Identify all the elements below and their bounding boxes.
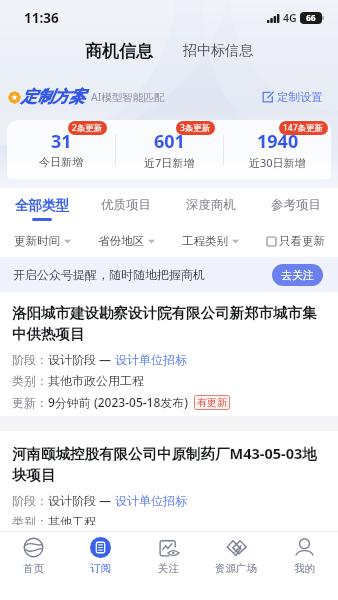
staticText: 全部类型 xyxy=(15,197,69,214)
staticText: 类别： xyxy=(12,373,48,388)
button[interactable]: 省份地区 xyxy=(84,225,168,257)
button[interactable]: 资源广场 xyxy=(202,532,270,600)
staticText: 601 xyxy=(154,129,185,154)
staticText: 商机信息 xyxy=(85,41,153,62)
button[interactable]: 工程类别 xyxy=(168,225,253,257)
button[interactable]: 订阅 xyxy=(67,532,134,600)
button[interactable]: 关注 xyxy=(134,532,202,600)
staticText: 河南颐城控股有限公司中原制药厂M43-05-03地块项目 xyxy=(12,443,326,484)
staticText: 近7日新增 xyxy=(144,155,195,170)
staticText: 设计阶段 — xyxy=(48,351,115,367)
button[interactable]: 601 xyxy=(116,120,223,179)
other: 首页 xyxy=(23,537,44,558)
staticText: 设计单位招标 xyxy=(115,352,187,367)
staticText: 147条更新 xyxy=(283,122,324,134)
button[interactable]: 招中标信息 xyxy=(179,42,257,60)
staticText: 阶段： xyxy=(12,352,48,367)
staticText: 去关注 xyxy=(281,268,314,282)
staticText: 我的 xyxy=(294,562,315,575)
staticText: 定制设置 xyxy=(277,90,323,104)
staticText: 工程类别 xyxy=(182,234,228,248)
staticText: 更新时间 xyxy=(14,234,60,248)
staticText: 66 xyxy=(306,12,316,24)
other: 我的 xyxy=(294,537,315,558)
staticText: 近30日新增 xyxy=(249,155,306,170)
button[interactable]: 商机信息 xyxy=(81,41,157,62)
staticText: 定制方案 xyxy=(21,87,85,107)
button[interactable]: 首页 xyxy=(0,532,67,600)
button[interactable]: 31 xyxy=(7,120,115,179)
staticText: 深度商机 xyxy=(186,197,236,213)
staticText: 资源广场 xyxy=(215,562,257,575)
button[interactable]: 1940 xyxy=(224,120,331,179)
staticText: 31 xyxy=(51,129,72,154)
staticText: 开启公众号提醒，随时随地把握商机 xyxy=(13,267,205,282)
button[interactable]: 参考项目 xyxy=(253,197,338,225)
staticText: 招中标信息 xyxy=(183,42,253,60)
staticText: 设计单位招标 xyxy=(115,493,187,508)
button[interactable]: 深度商机 xyxy=(168,197,253,225)
other: 资源广场 xyxy=(226,537,247,558)
button[interactable]: 洛阳城市建设勘察设计院有限公司新郑市城市集中供热项目 xyxy=(0,292,338,416)
staticText: 洛阳城市建设勘察设计院有限公司新郑市城市集中供热项目 xyxy=(12,304,326,343)
staticText: 9分钟前 (2023-05-18发布) xyxy=(48,394,189,410)
staticText: 3条更新 xyxy=(180,122,211,134)
staticText: AI模型智能匹配 xyxy=(91,90,165,104)
staticText: 省份地区 xyxy=(98,234,144,248)
staticText: 阶段： xyxy=(12,493,48,508)
staticText: 优质项目 xyxy=(101,197,151,213)
button[interactable]: 河南颐城控股有限公司中原制药厂M43-05-03地块项目 xyxy=(0,431,338,531)
other: 订阅 xyxy=(90,537,111,558)
button[interactable]: 只看更新 xyxy=(253,225,338,257)
button[interactable]: 优质项目 xyxy=(84,197,168,225)
staticText: 更新： xyxy=(12,395,48,410)
button[interactable]: 定制设置 xyxy=(259,87,326,107)
staticText: 关注 xyxy=(158,562,179,575)
staticText: 今日新增 xyxy=(39,155,83,169)
button[interactable]: 全部类型 xyxy=(0,197,84,225)
button[interactable]: 去关注 xyxy=(272,264,323,286)
staticText: 设计阶段 — xyxy=(48,492,115,508)
staticText: 参考项目 xyxy=(271,197,321,213)
staticText: 1940 xyxy=(257,129,299,154)
button[interactable]: 更新时间 xyxy=(0,225,84,257)
button[interactable]: 我的 xyxy=(270,532,338,600)
staticText: 其他市政公用工程 xyxy=(48,373,144,388)
staticText: 类别： xyxy=(12,514,48,525)
staticText: 只看更新 xyxy=(279,234,325,248)
other: 关注 xyxy=(158,537,179,558)
staticText: 首页 xyxy=(23,562,44,575)
staticText: 其他工程 xyxy=(48,514,96,525)
staticText: 订阅 xyxy=(90,562,111,575)
staticText: 4G xyxy=(283,11,297,25)
staticText: 有更新 xyxy=(197,396,227,409)
staticText: 11:36 xyxy=(24,9,59,27)
staticText: 2条更新 xyxy=(72,122,103,134)
